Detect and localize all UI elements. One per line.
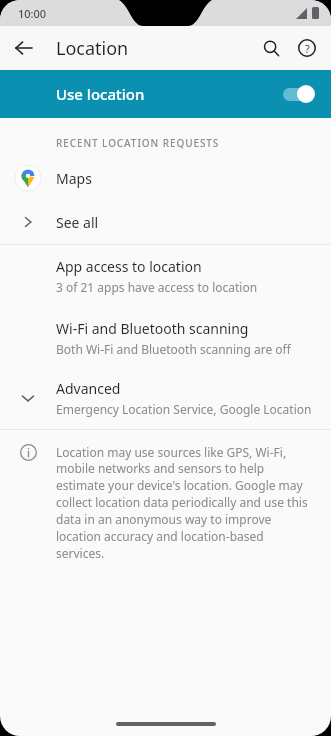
button[interactable]: See all — [0, 200, 331, 244]
button[interactable]: Back — [8, 32, 40, 64]
staticText: RECENT LOCATION REQUESTS — [56, 136, 220, 150]
staticText: Maps — [56, 169, 92, 188]
staticText: Location may use sources like GPS, Wi-Fi… — [56, 444, 313, 562]
staticText: Use location — [56, 84, 281, 104]
button[interactable]: Maps — [0, 156, 331, 200]
staticText: Wi-Fi and Bluetooth scanning — [56, 319, 249, 338]
button[interactable]: Use location — [0, 70, 331, 118]
staticText: App access to location — [56, 257, 202, 276]
button[interactable]: Help — [289, 30, 325, 66]
button[interactable]: Advanced — [0, 369, 331, 429]
staticText: 3 of 21 apps have access to location — [56, 279, 258, 295]
button[interactable]: App access to location — [0, 245, 331, 307]
button[interactable]: Search — [253, 30, 289, 66]
staticText: Both Wi-Fi and Bluetooth scanning are of… — [56, 341, 291, 357]
staticText: Location — [56, 36, 129, 61]
staticText: Advanced — [56, 379, 121, 398]
staticText: See all — [56, 213, 99, 232]
staticText: 10:00 — [18, 6, 47, 21]
button[interactable]: Wi-Fi and Bluetooth scanning — [0, 307, 331, 369]
staticText: ? — [305, 41, 310, 56]
staticText: Emergency Location Service, Google Locat… — [56, 401, 317, 417]
